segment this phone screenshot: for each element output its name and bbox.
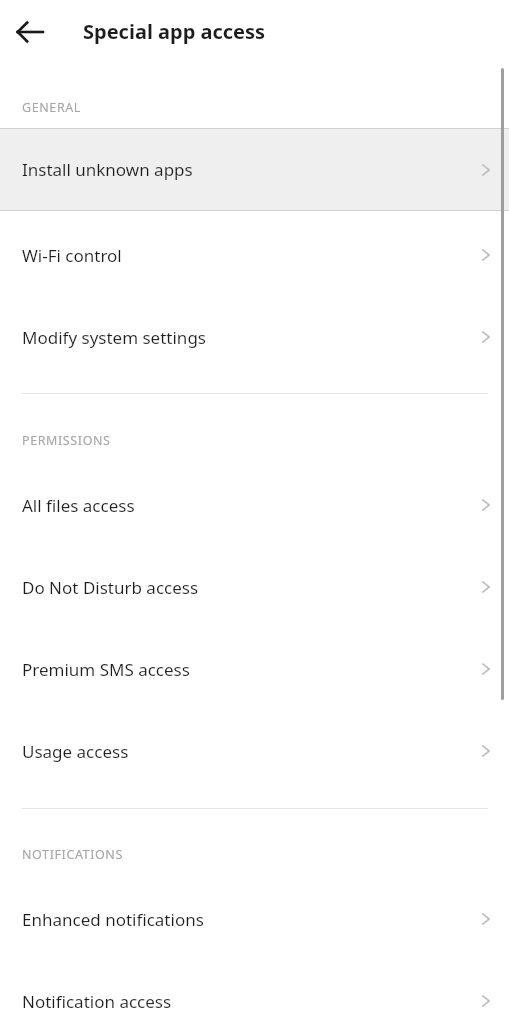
staticText: Enhanced notifications	[22, 908, 204, 931]
staticText: Usage access	[22, 740, 129, 763]
staticText: PERMISSIONS	[22, 432, 111, 449]
staticText: Install unknown apps	[22, 158, 193, 181]
staticText: Modify system settings	[22, 326, 206, 349]
button[interactable]: Do Not Disturb access	[0, 546, 509, 628]
staticText: Do Not Disturb access	[22, 576, 199, 599]
staticText: GENERAL	[22, 99, 82, 116]
button[interactable]: Notification access	[0, 960, 509, 1024]
button[interactable]: Enhanced notifications	[0, 878, 509, 960]
staticText: Notification access	[22, 990, 172, 1013]
staticText: Premium SMS access	[22, 658, 190, 681]
button[interactable]: Back	[12, 14, 48, 50]
staticText: All files access	[22, 494, 135, 517]
button[interactable]: Wi-Fi control	[0, 214, 509, 296]
button[interactable]: Install unknown apps	[0, 128, 509, 211]
staticText: NOTIFICATIONS	[22, 846, 123, 863]
button[interactable]: Premium SMS access	[0, 628, 509, 710]
button[interactable]: Modify system settings	[0, 296, 509, 378]
staticText: Wi-Fi control	[22, 244, 122, 267]
staticText: Special app access	[83, 18, 266, 45]
button[interactable]: All files access	[0, 464, 509, 546]
button[interactable]: Usage access	[0, 710, 509, 792]
